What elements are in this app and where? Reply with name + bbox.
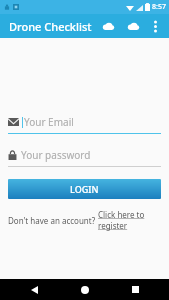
button[interactable]: Download from cloud: [123, 16, 143, 36]
staticText: 8:57: [152, 2, 166, 12]
staticText: Click here to register: [98, 209, 161, 231]
staticText: LOGIN: [70, 183, 99, 195]
staticText: Don't have an account?: [8, 215, 98, 226]
staticText: Your password: [21, 148, 91, 162]
staticText: Your Email: [24, 115, 74, 129]
button[interactable]: Click here to register: [98, 209, 161, 231]
button[interactable]: Recent apps: [118, 279, 152, 300]
button[interactable]: Your password: [8, 147, 161, 167]
button[interactable]: Home: [68, 279, 102, 300]
staticText: Drone Checklist: [9, 19, 92, 34]
button[interactable]: More options: [146, 17, 164, 35]
button[interactable]: Upload to cloud: [98, 16, 118, 36]
button[interactable]: Your Email: [8, 114, 161, 134]
button[interactable]: LOGIN: [8, 179, 161, 199]
button[interactable]: Back: [17, 279, 51, 300]
